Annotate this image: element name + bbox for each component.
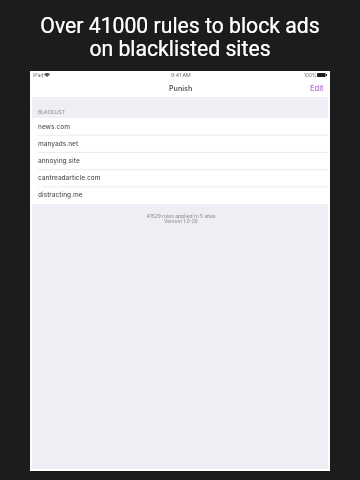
button[interactable]: distracting.me <box>30 186 330 203</box>
other: Battery full <box>317 73 327 77</box>
staticText: annoying.site <box>38 157 80 165</box>
button[interactable]: annoying.site <box>30 152 330 169</box>
staticText: distracting.me <box>38 191 83 199</box>
button[interactable]: Edit <box>303 80 330 97</box>
staticText: Over 41000 rules to block ads on blackli… <box>0 13 360 62</box>
button[interactable]: cantreadarticle.com <box>30 169 330 186</box>
other: Wi-Fi <box>44 73 50 77</box>
staticText: iPad <box>33 72 44 78</box>
button[interactable]: manyads.net <box>30 135 330 152</box>
staticText: Edit <box>310 84 324 93</box>
staticText: Punish <box>169 84 193 93</box>
button[interactable]: news.com <box>30 118 330 135</box>
staticText: 9:41 AM <box>171 72 191 78</box>
staticText: BLACKLIST <box>38 109 65 115</box>
staticText: cantreadarticle.com <box>38 174 101 182</box>
staticText: manyads.net <box>38 140 79 148</box>
staticText: 41529 rules applied to 5 sites Version 1… <box>31 213 331 225</box>
staticText: news.com <box>38 123 70 131</box>
staticText: 100% <box>304 72 317 78</box>
